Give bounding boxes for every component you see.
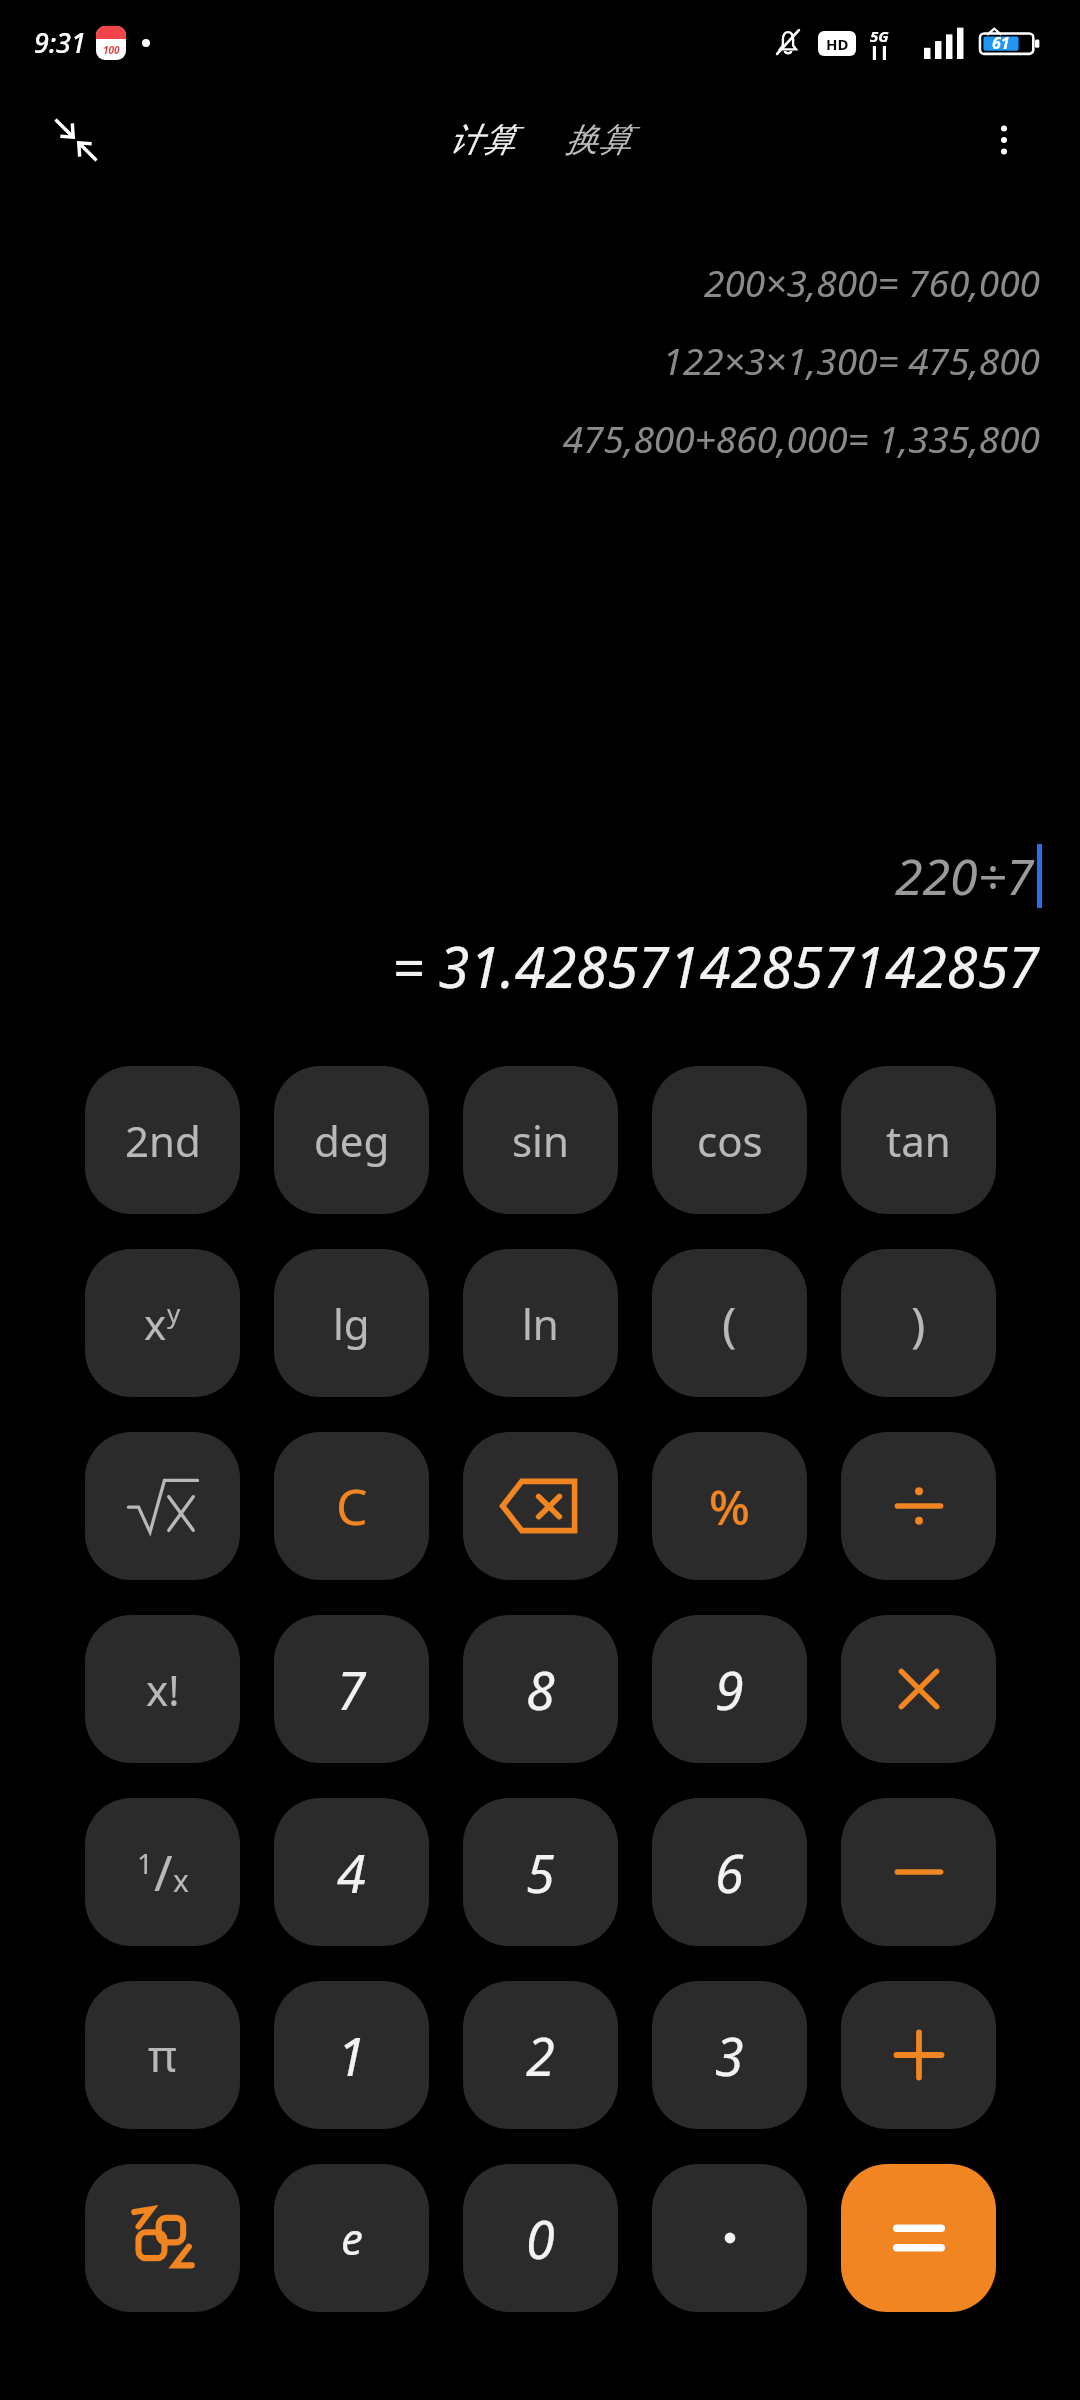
button[interactable]: lg — [274, 1249, 429, 1397]
staticText: 2nd — [125, 1112, 201, 1169]
staticText: 61 — [992, 32, 1010, 54]
staticText: ( — [722, 1291, 737, 1356]
button[interactable]: Backspace — [463, 1432, 618, 1580]
button[interactable]: Collapse — [40, 104, 112, 176]
button[interactable]: 5 — [463, 1798, 618, 1946]
staticText: deg — [314, 1112, 390, 1169]
button[interactable]: 2 — [463, 1981, 618, 2129]
button[interactable]: deg — [274, 1066, 429, 1214]
staticText: ln — [522, 1295, 559, 1352]
button[interactable]: π — [85, 1981, 240, 2129]
button[interactable]: 200×3,800= 760,000 — [704, 243, 1040, 321]
button[interactable]: x! — [85, 1615, 240, 1763]
button[interactable]: 122×3×1,300= 475,800 — [662, 321, 1040, 399]
button[interactable]: Handwriting input — [85, 2164, 240, 2312]
button[interactable]: % — [652, 1432, 807, 1580]
staticText: x — [144, 1295, 167, 1352]
staticText: 计算 — [449, 119, 515, 161]
button[interactable]: 计算 — [439, 111, 525, 169]
staticText: % — [709, 1474, 750, 1539]
button[interactable]: 4 — [274, 1798, 429, 1946]
button[interactable]: C — [274, 1432, 429, 1580]
button[interactable]: sin — [463, 1066, 618, 1214]
button[interactable]: e — [274, 2164, 429, 2312]
staticText: 5 — [526, 1837, 555, 1908]
button[interactable]: × — [841, 1615, 996, 1763]
button[interactable]: . — [652, 2164, 807, 2312]
staticText: C — [336, 1472, 368, 1540]
button[interactable]: 0 — [463, 2164, 618, 2312]
button[interactable]: = — [841, 2164, 996, 2312]
button[interactable]: 9 — [652, 1615, 807, 1763]
staticText: 200×3,800= 760,000 — [704, 257, 1040, 307]
button[interactable]: 475,800+860,000= 1,335,800 — [562, 399, 1040, 477]
button[interactable]: 6 — [652, 1798, 807, 1946]
staticText: 475,800+860,000= 1,335,800 — [562, 413, 1040, 463]
staticText: lg — [333, 1295, 370, 1352]
staticText: y — [167, 1295, 181, 1330]
staticText: = 31.42857142857142857 — [392, 928, 1040, 1004]
staticText: 122×3×1,300= 475,800 — [662, 335, 1040, 385]
staticText: HD — [826, 34, 849, 54]
button[interactable]: tan — [841, 1066, 996, 1214]
staticText: 9:31 — [34, 24, 86, 61]
staticText: 5G — [870, 26, 889, 46]
staticText: 9 — [715, 1654, 744, 1725]
staticText: e — [341, 2208, 363, 2268]
button[interactable]: + — [841, 1981, 996, 2129]
staticText: 8 — [526, 1654, 555, 1725]
staticText: tan — [886, 1112, 951, 1169]
staticText: 2 — [526, 2020, 555, 2091]
staticText: sin — [512, 1112, 569, 1169]
staticText: 6 — [715, 1837, 744, 1908]
button[interactable]: x to the power of y — [85, 1249, 240, 1397]
button[interactable]: One over x — [85, 1798, 240, 1946]
button[interactable]: Square root — [85, 1432, 240, 1580]
staticText: 100 — [103, 43, 120, 57]
button[interactable]: ln — [463, 1249, 618, 1397]
button[interactable]: ) — [841, 1249, 996, 1397]
button[interactable]: 2nd — [85, 1066, 240, 1214]
staticText: x — [173, 1860, 189, 1901]
staticText: 0 — [526, 2203, 555, 2274]
button[interactable]: cos — [652, 1066, 807, 1214]
button[interactable]: More options — [968, 104, 1040, 176]
staticText: 1 — [337, 2020, 366, 2091]
staticText: 7 — [337, 1654, 366, 1725]
staticText: 1 — [137, 1844, 154, 1882]
staticText: 220÷7 — [895, 842, 1034, 910]
button[interactable]: ÷ — [841, 1432, 996, 1580]
button[interactable]: − — [841, 1798, 996, 1946]
staticText: cos — [697, 1112, 763, 1169]
button[interactable]: ( — [652, 1249, 807, 1397]
staticText: x! — [146, 1661, 180, 1718]
button[interactable]: 1 — [274, 1981, 429, 2129]
staticText: 4 — [337, 1837, 366, 1908]
button[interactable]: 8 — [463, 1615, 618, 1763]
button[interactable]: 3 — [652, 1981, 807, 2129]
button[interactable]: 换算 — [555, 111, 641, 169]
staticText: ) — [911, 1291, 926, 1356]
staticText: 3 — [715, 2020, 744, 2091]
button[interactable]: 7 — [274, 1615, 429, 1763]
staticText: π — [148, 2025, 177, 2085]
staticText: 换算 — [565, 119, 631, 161]
staticText: / — [154, 1838, 173, 1906]
